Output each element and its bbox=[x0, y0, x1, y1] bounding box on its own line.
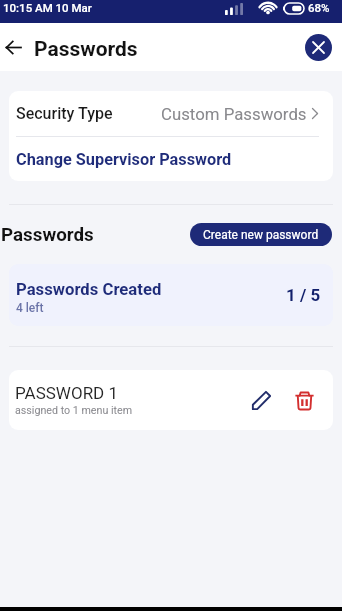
button[interactable]: Close bbox=[305, 34, 332, 61]
staticText: Custom Passwords bbox=[161, 104, 307, 124]
staticText: 4 left bbox=[16, 301, 44, 315]
button[interactable]: Security Type bbox=[9, 91, 333, 136]
staticText: Passwords Created bbox=[16, 280, 162, 300]
button[interactable]: Passwords Created bbox=[9, 264, 333, 326]
button[interactable]: Change Supervisor Password bbox=[9, 137, 333, 181]
staticText: Create new password bbox=[203, 228, 319, 242]
staticText: 10:15 AM 10 Mar bbox=[3, 1, 92, 14]
staticText: 68% bbox=[308, 1, 330, 14]
button[interactable]: Create new password bbox=[190, 223, 332, 246]
staticText: Passwords bbox=[1, 224, 94, 246]
staticText: Change Supervisor Password bbox=[16, 150, 232, 169]
staticText: assigned to 1 menu item bbox=[15, 404, 133, 417]
button[interactable]: Delete bbox=[287, 383, 321, 417]
staticText: PASSWORD 1 bbox=[15, 383, 119, 403]
staticText: Security Type bbox=[16, 104, 113, 123]
button[interactable]: Edit bbox=[244, 383, 278, 417]
staticText: 1 / 5 bbox=[286, 285, 321, 305]
button[interactable]: Back bbox=[0, 23, 26, 71]
staticText: Passwords bbox=[34, 37, 138, 62]
